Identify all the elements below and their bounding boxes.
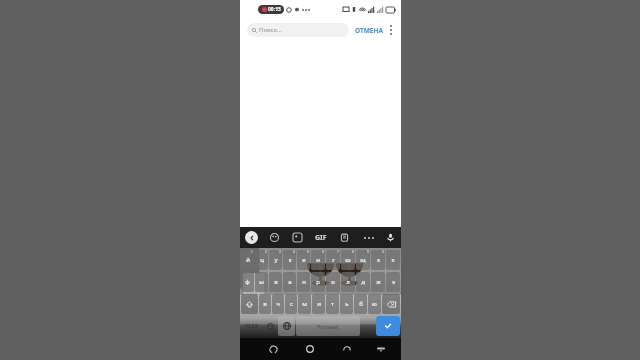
button[interactable]: э xyxy=(386,272,400,292)
staticText: 2 xyxy=(265,250,267,254)
button[interactable]: ю xyxy=(368,294,381,314)
button[interactable]: ОТМЕНА xyxy=(354,24,384,37)
button[interactable]: Поиск... xyxy=(247,23,349,37)
button[interactable]: ь xyxy=(340,294,353,314)
staticText: 8 xyxy=(352,250,354,254)
button[interactable]: с xyxy=(285,294,297,314)
staticText: р xyxy=(316,278,320,286)
staticText: GIF xyxy=(315,233,327,243)
button[interactable]: Stickers xyxy=(269,232,280,243)
staticText: 5 xyxy=(307,250,309,254)
button[interactable]: р xyxy=(311,272,325,292)
staticText: 7 xyxy=(337,250,339,254)
staticText: ж xyxy=(376,278,381,286)
staticText: ы xyxy=(259,278,264,286)
staticText: 1 xyxy=(251,250,253,254)
staticText: ОТМЕНА xyxy=(355,26,383,35)
button[interactable]: ф xyxy=(241,272,254,292)
staticText: д xyxy=(361,278,365,286)
staticText: к xyxy=(288,256,292,264)
button[interactable]: и xyxy=(312,294,325,314)
button[interactable]: Voice input xyxy=(385,232,396,243)
button[interactable]: ?123 xyxy=(241,316,262,336)
staticText: 00:15 xyxy=(268,6,281,13)
button[interactable]: GIF xyxy=(315,233,327,243)
button[interactable]: Recents xyxy=(266,342,280,356)
button[interactable]: г xyxy=(326,250,340,270)
button[interactable]: з xyxy=(371,250,385,270)
button[interactable]: х xyxy=(386,250,400,270)
staticText: 0 xyxy=(382,250,384,254)
button[interactable]: Enter xyxy=(376,316,400,336)
button[interactable]: ч xyxy=(272,294,284,314)
button[interactable]: ш xyxy=(341,250,355,270)
button[interactable]: к xyxy=(283,250,296,270)
staticText: ?123 xyxy=(245,322,258,330)
staticText: э xyxy=(392,278,395,286)
button[interactable]: Shift xyxy=(241,294,258,314)
staticText: ф xyxy=(245,278,250,286)
staticText: л xyxy=(346,278,350,286)
button[interactable]: Back xyxy=(340,342,354,356)
staticText: 6 xyxy=(322,250,324,254)
staticText: я xyxy=(263,300,267,308)
button[interactable]: л xyxy=(341,272,355,292)
button[interactable]: More options xyxy=(388,23,394,37)
button[interactable]: а xyxy=(283,272,296,292)
staticText: ь xyxy=(345,300,349,308)
staticText: ц xyxy=(260,256,264,264)
button[interactable]: щ xyxy=(356,250,370,270)
staticText: е xyxy=(302,256,306,264)
button[interactable]: Hide keyboard xyxy=(374,342,388,356)
staticText: о xyxy=(331,278,335,286)
button[interactable]: Backspace xyxy=(382,294,400,314)
button[interactable]: й xyxy=(241,250,254,270)
button[interactable]: н xyxy=(311,250,325,270)
staticText: й xyxy=(246,256,250,264)
staticText: , xyxy=(367,321,369,331)
button[interactable]: ж xyxy=(371,272,385,292)
staticText: м xyxy=(302,300,307,308)
staticText: т xyxy=(331,300,334,308)
staticText: з xyxy=(377,256,380,264)
button[interactable]: м xyxy=(298,294,311,314)
staticText: 9 xyxy=(367,250,369,254)
staticText: п xyxy=(302,278,306,286)
staticText: Поиск... xyxy=(259,26,282,34)
staticText: ю xyxy=(372,300,377,308)
button[interactable]: More xyxy=(361,234,377,242)
staticText: ш xyxy=(345,256,351,264)
button[interactable]: Back xyxy=(245,231,258,244)
button[interactable]: о xyxy=(326,272,340,292)
button[interactable]: б xyxy=(354,294,367,314)
staticText: у xyxy=(274,256,278,264)
button[interactable]: Emoji xyxy=(263,316,277,336)
button[interactable]: в xyxy=(269,272,282,292)
button[interactable]: Image xyxy=(292,232,303,243)
staticText: 3 xyxy=(279,250,281,254)
button[interactable]: я xyxy=(259,294,271,314)
button[interactable]: Clipboard xyxy=(339,232,350,243)
button[interactable]: ы xyxy=(255,272,268,292)
button[interactable]: п xyxy=(297,272,310,292)
staticText: щ xyxy=(360,256,366,264)
staticText: Русский xyxy=(317,323,339,330)
staticText: х xyxy=(391,256,395,264)
staticText: ч xyxy=(276,300,280,308)
staticText: и xyxy=(317,300,321,308)
staticText: г xyxy=(332,256,335,264)
button[interactable]: Home xyxy=(303,342,317,356)
staticText: с xyxy=(290,300,293,308)
button[interactable]: Space xyxy=(296,316,360,336)
button[interactable]: Language xyxy=(278,316,295,336)
button[interactable]: е xyxy=(297,250,310,270)
staticText: в xyxy=(274,278,278,286)
button[interactable]: , xyxy=(361,316,375,336)
staticText: 4 xyxy=(293,250,295,254)
button[interactable]: т xyxy=(326,294,339,314)
button[interactable]: ц xyxy=(255,250,268,270)
button[interactable]: д xyxy=(356,272,370,292)
staticText: а xyxy=(288,278,292,286)
button[interactable]: у xyxy=(269,250,282,270)
staticText: н xyxy=(316,256,320,264)
